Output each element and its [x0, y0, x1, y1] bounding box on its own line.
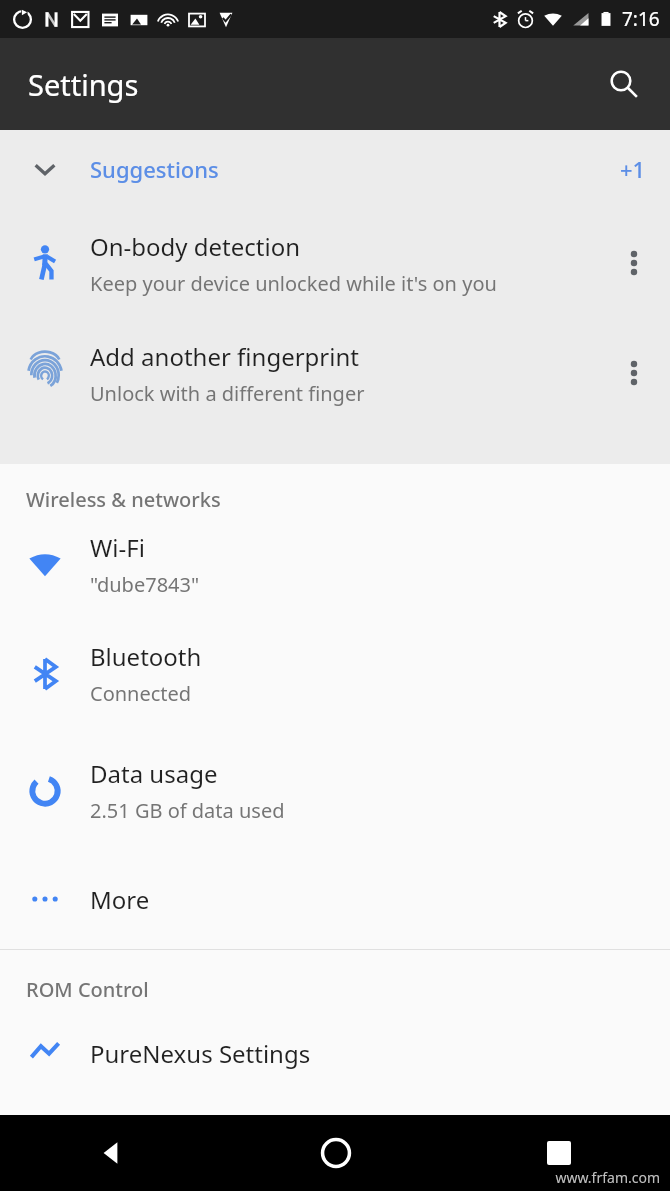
button[interactable]: PureNexus Settings [0, 1003, 670, 1103]
staticText: On-body detection [90, 230, 301, 263]
staticText: Add another fingerprint [90, 340, 359, 373]
button[interactable]: Search [596, 56, 652, 112]
staticText: PureNexus Settings [90, 1037, 311, 1070]
button[interactable]: Wi-Fi [0, 513, 670, 615]
staticText: Keep your device unlocked while it's on … [90, 270, 497, 297]
button[interactable]: More options [598, 318, 670, 428]
staticText: More [90, 883, 150, 916]
staticText: Suggestions [90, 154, 219, 184]
staticText: "dube7843" [90, 571, 200, 598]
button[interactable]: Recent apps [447, 1115, 670, 1191]
button[interactable]: More [0, 849, 670, 949]
staticText: Wi-Fi [90, 531, 145, 564]
button[interactable]: Suggestions [0, 130, 670, 208]
staticText: Wireless & networks [26, 486, 221, 513]
staticText: Unlock with a different finger [90, 380, 365, 407]
staticText: +1 [620, 154, 646, 184]
staticText: 2.51 GB of data used [90, 797, 285, 824]
button[interactable]: Data usage [0, 732, 670, 849]
button[interactable]: On-body detection [0, 208, 670, 318]
button[interactable]: Add another fingerprint [0, 318, 670, 428]
button[interactable]: Back [0, 1115, 224, 1191]
staticText: Bluetooth [90, 640, 202, 673]
button[interactable]: Home [224, 1115, 447, 1191]
staticText: www.frfam.com [555, 1168, 660, 1187]
staticText: Data usage [90, 757, 218, 790]
staticText: Settings [28, 65, 139, 104]
button[interactable]: More options [598, 208, 670, 318]
staticText: 7:16 [622, 6, 660, 32]
button[interactable]: Bluetooth [0, 615, 670, 732]
staticText: ROM Control [26, 976, 149, 1003]
staticText: Connected [90, 680, 192, 707]
